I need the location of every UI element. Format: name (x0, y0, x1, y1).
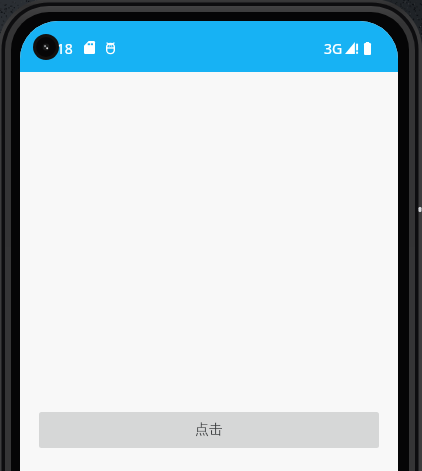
staticText: 3G (324, 39, 343, 58)
staticText: 点击 (195, 421, 223, 439)
staticText: 9:18 (45, 39, 73, 58)
button[interactable]: 点击 (39, 412, 379, 448)
